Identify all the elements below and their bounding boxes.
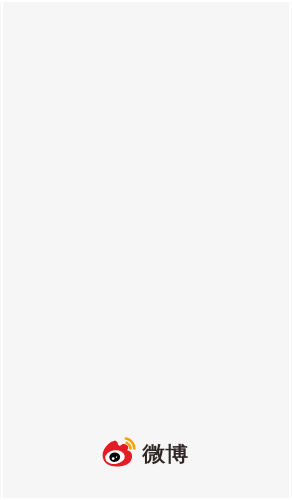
staticText: 微博 — [142, 442, 188, 467]
